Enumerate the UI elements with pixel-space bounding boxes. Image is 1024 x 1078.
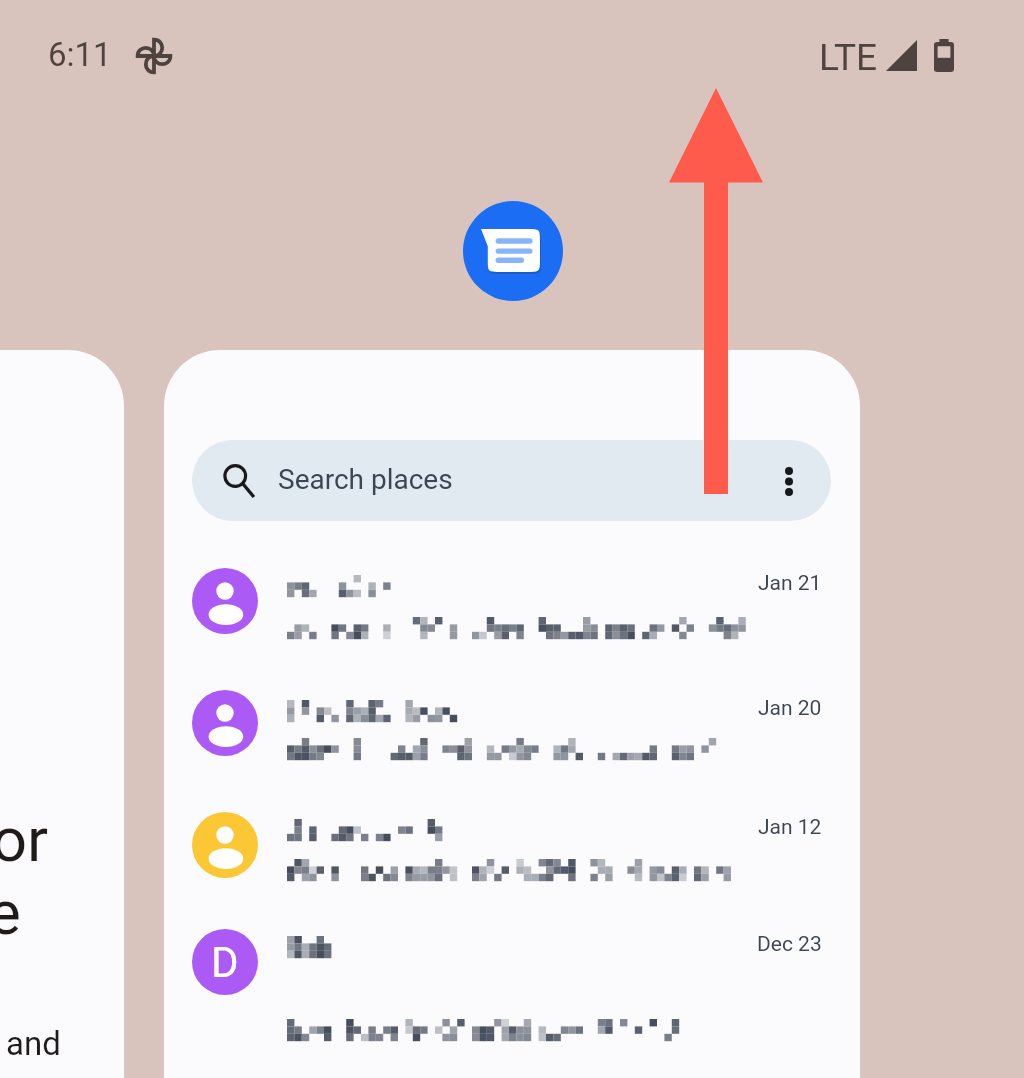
button[interactable]: Messages [463,201,563,301]
button[interactable]: D [164,898,860,1020]
staticText: 6:11 [48,35,112,74]
staticText: Jan 20 [758,696,822,721]
staticText: Search places [278,463,453,496]
button[interactable]: Messages task card [164,350,860,1078]
staticText: experience [0,876,21,949]
staticText: and [6,1024,61,1063]
button[interactable]: Jan 20 [164,672,860,794]
staticText: monitor [0,803,49,876]
staticText: Jan 12 [758,815,822,840]
staticText: Jan 21 [758,571,822,596]
button[interactable]: monitor [0,350,124,1078]
button[interactable]: Jan 12 [164,794,860,916]
button[interactable]: More options [759,441,819,521]
button[interactable]: Search places [192,440,831,521]
staticText: D [211,938,239,987]
staticText: LTE [819,36,878,79]
staticText: Dec 23 [757,932,822,957]
button[interactable]: Jan 21 [164,550,860,672]
